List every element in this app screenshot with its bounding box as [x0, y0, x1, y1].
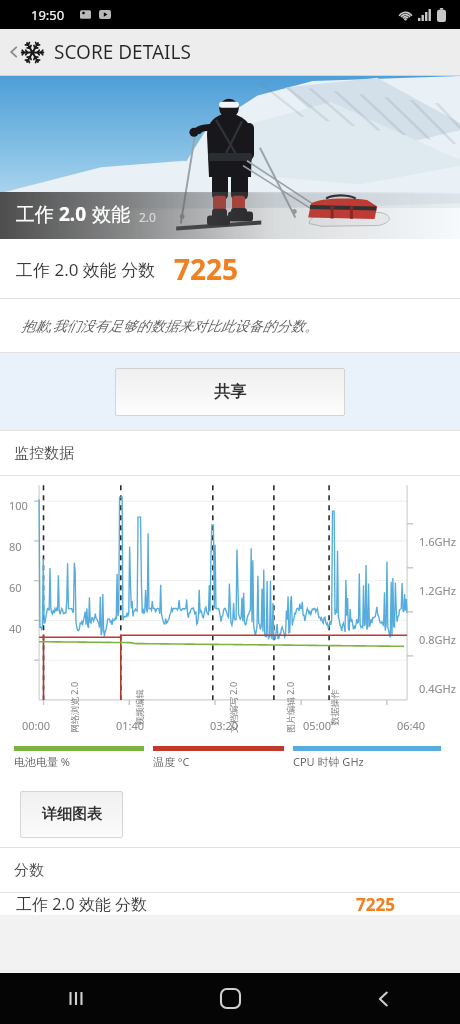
staticText: 40	[9, 621, 22, 636]
staticText: 06:40	[397, 718, 426, 733]
button[interactable]: Back	[307, 973, 460, 1024]
staticText: 图片编辑 2.0	[284, 681, 296, 733]
staticText: 网络浏览 2.0	[68, 681, 80, 733]
staticText: SCORE DETAILS	[54, 39, 191, 65]
staticText: 数据操作	[328, 689, 339, 725]
staticText: 工作	[16, 201, 59, 227]
staticText: 80	[9, 539, 22, 554]
staticText: 01:40	[116, 718, 145, 733]
staticText: 文档编写 2.0	[227, 681, 239, 733]
staticText: 60	[9, 580, 22, 595]
staticText: 00:00	[22, 718, 51, 733]
staticText: 7225	[356, 893, 395, 915]
staticText: 7225	[174, 250, 239, 288]
staticText: 05:00	[303, 718, 332, 733]
staticText: 电池电量 %	[14, 754, 71, 769]
staticText: 温度 °C	[153, 754, 190, 769]
staticText: 2.0	[59, 201, 87, 227]
staticText: 0.8GHz	[419, 632, 456, 647]
staticText: 监控数据	[14, 444, 74, 463]
staticText: 效能	[87, 201, 130, 227]
staticText: 1.6GHz	[419, 534, 456, 549]
button[interactable]: 详细图表	[20, 791, 123, 838]
button[interactable]: Recents	[0, 973, 154, 1024]
staticText: 03:20	[210, 718, 239, 733]
button[interactable]: Back	[0, 29, 460, 75]
staticText: 0.4GHz	[419, 681, 456, 696]
staticText: 工作 2.0 效能 分数	[16, 258, 156, 281]
button[interactable]: Home	[154, 973, 307, 1024]
staticText: 共享	[214, 382, 246, 402]
other: Back	[7, 41, 20, 63]
staticText: 详细图表	[42, 805, 102, 824]
staticText: 视频编辑	[133, 689, 144, 725]
staticText: 分数	[14, 861, 44, 880]
staticText: CPU 时钟 GHz	[293, 754, 364, 769]
button[interactable]: 共享	[115, 368, 345, 416]
staticText: 工作 2.0 效能 分数	[16, 893, 148, 915]
staticText: 1.2GHz	[419, 583, 456, 598]
button[interactable]: 工作 2.0 效能 分数	[0, 239, 460, 298]
staticText: 19:50	[31, 6, 65, 24]
staticText: 2.0	[139, 209, 156, 225]
staticText: 100	[9, 498, 28, 513]
staticText: 抱歉,我们没有足够的数据来对比此设备的分数。	[21, 316, 319, 335]
